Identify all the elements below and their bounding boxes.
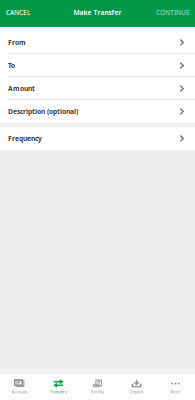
- staticText: Deposit: [130, 389, 143, 394]
- button[interactable]: CONTINUE: [150, 0, 195, 26]
- staticText: Frequency: [8, 134, 42, 143]
- staticText: CONTINUE: [156, 8, 190, 17]
- button[interactable]: To: [0, 54, 195, 77]
- button[interactable]: Bill Pay: [78, 374, 117, 400]
- staticText: From: [8, 38, 26, 47]
- staticText: Make Transfer: [73, 8, 121, 17]
- staticText: To: [8, 61, 15, 70]
- button[interactable]: CANCEL: [0, 0, 37, 26]
- staticText: CANCEL: [6, 8, 31, 17]
- staticText: More: [170, 389, 180, 394]
- staticText: Amount: [8, 84, 35, 93]
- button[interactable]: Amount: [0, 77, 195, 100]
- staticText: Description (optional): [8, 107, 78, 116]
- button[interactable]: More: [156, 374, 195, 400]
- button[interactable]: Frequency: [0, 127, 195, 150]
- staticText: Accounts: [11, 389, 27, 394]
- button[interactable]: Description (optional): [0, 100, 195, 123]
- staticText: Transfers: [50, 389, 67, 394]
- staticText: Bill Pay: [91, 389, 104, 394]
- button[interactable]: From: [0, 31, 195, 54]
- button[interactable]: Deposit: [117, 374, 156, 400]
- button[interactable]: Transfers: [39, 374, 78, 400]
- button[interactable]: Accounts: [0, 374, 39, 400]
